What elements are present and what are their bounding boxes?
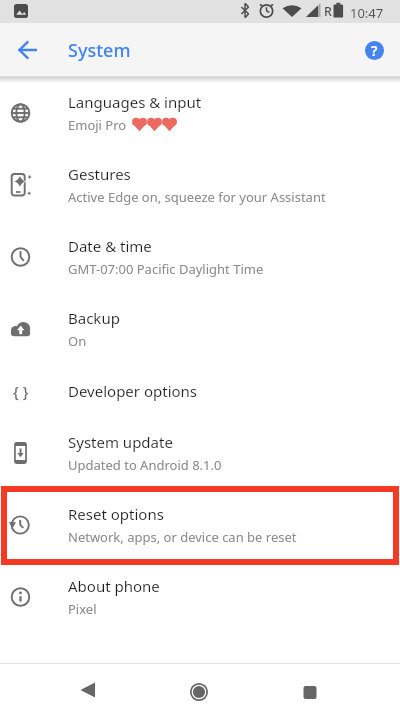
staticText: 10:47 xyxy=(350,4,384,22)
staticText: { } xyxy=(13,381,29,401)
button[interactable]: Reset options xyxy=(0,489,400,561)
staticText: Reset options xyxy=(68,504,164,524)
staticText: Active Edge on, squeeze for your Assista… xyxy=(68,188,326,206)
staticText: System update xyxy=(68,432,173,452)
button[interactable]: ? xyxy=(365,41,384,60)
button[interactable]: Languages & input xyxy=(0,77,400,149)
staticText: On xyxy=(68,332,87,350)
button[interactable] xyxy=(134,664,267,712)
button[interactable]: Date & time xyxy=(0,221,400,293)
staticText: ? xyxy=(371,41,378,60)
button[interactable] xyxy=(11,33,45,67)
staticText: Network, apps, or device can be reset xyxy=(68,528,297,546)
button[interactable]: Gestures xyxy=(0,149,400,221)
button[interactable]: { } xyxy=(0,365,400,417)
staticText: Pixel xyxy=(68,600,97,618)
staticText: Languages & input xyxy=(68,92,202,112)
staticText: R xyxy=(324,3,332,20)
button[interactable]: About phone xyxy=(0,561,400,633)
staticText: About phone xyxy=(68,576,160,596)
staticText: Date & time xyxy=(68,236,152,256)
staticText: System xyxy=(68,38,131,63)
button[interactable]: System update xyxy=(0,417,400,489)
button[interactable] xyxy=(0,664,134,712)
button[interactable] xyxy=(267,664,400,712)
staticText: Updated to Android 8.1.0 xyxy=(68,456,222,474)
staticText: Backup xyxy=(68,308,120,328)
staticText: Gestures xyxy=(68,164,131,184)
staticText: Developer options xyxy=(68,381,198,401)
button[interactable]: Backup xyxy=(0,293,400,365)
staticText: Emoji Pro xyxy=(68,116,127,134)
staticText: GMT-07:00 Pacific Daylight Time xyxy=(68,260,264,278)
